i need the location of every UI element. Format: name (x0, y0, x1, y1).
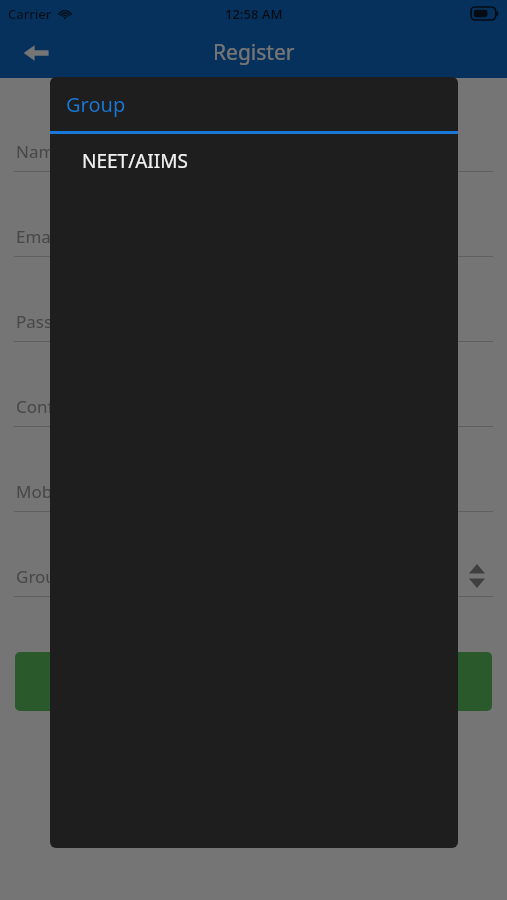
button[interactable]: Name (0, 128, 507, 213)
button[interactable]: Password (0, 298, 507, 383)
staticText: Email Address (16, 225, 129, 248)
button[interactable]: NEET/AIIMS (50, 134, 458, 188)
staticText: Register (213, 38, 295, 67)
button[interactable]: Register (15, 652, 492, 711)
staticText: Carrier (8, 5, 52, 23)
button[interactable]: Group (0, 553, 507, 638)
button[interactable]: Email Address (0, 213, 507, 298)
staticText: NEET/AIIMS (82, 148, 188, 174)
button[interactable]: Mobile Number (0, 468, 507, 553)
staticText: Confirm Password (16, 395, 162, 418)
staticText: 12:58 AM (225, 5, 283, 23)
button[interactable]: Confirm Password (0, 383, 507, 468)
staticText: Password (16, 310, 93, 333)
staticText: Name (16, 140, 64, 163)
button[interactable]: Back (14, 31, 58, 75)
staticText: Group (66, 91, 126, 118)
staticText: Group (16, 565, 67, 588)
staticText: Mobile Number (16, 480, 142, 503)
